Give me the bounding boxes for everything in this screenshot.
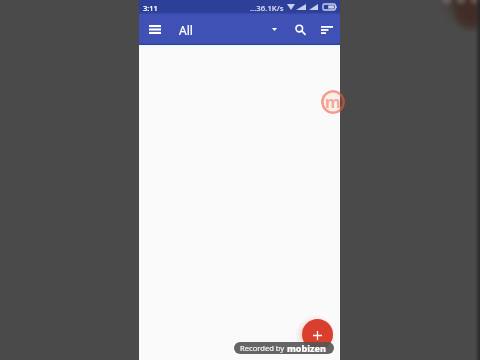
button[interactable]: All bbox=[174, 14, 198, 45]
button[interactable]: Mobizen bbox=[321, 90, 345, 114]
staticText: All bbox=[179, 22, 193, 38]
button[interactable]: Search bbox=[289, 14, 311, 45]
button[interactable]: Menu bbox=[142, 14, 168, 45]
staticText: m bbox=[325, 91, 341, 113]
button[interactable]: Expand bbox=[265, 14, 284, 45]
staticText: Recorded by bbox=[240, 343, 285, 353]
staticText: mobizen bbox=[287, 342, 326, 354]
button[interactable]: Sort bbox=[317, 14, 337, 45]
button[interactable]: Add bbox=[302, 319, 333, 350]
staticText: ...36.1K/s bbox=[250, 3, 284, 14]
staticText: 3:11 bbox=[143, 3, 158, 13]
